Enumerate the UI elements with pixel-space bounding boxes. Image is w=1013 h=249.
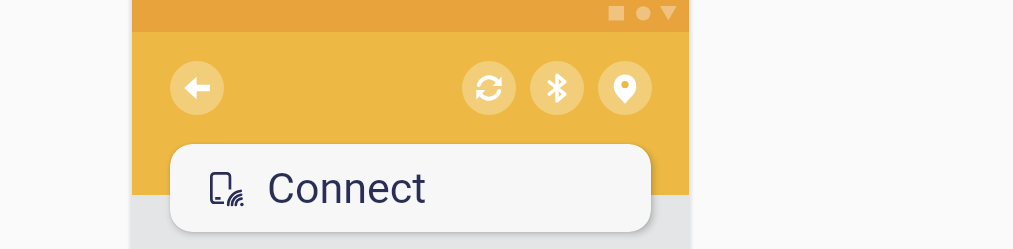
staticText: Connect	[267, 163, 427, 213]
button[interactable]: Back	[170, 61, 224, 115]
button[interactable]: Connect	[170, 144, 651, 232]
button[interactable]: Location	[598, 61, 652, 115]
button[interactable]: Sync	[462, 61, 516, 115]
button[interactable]: Bluetooth	[530, 61, 584, 115]
